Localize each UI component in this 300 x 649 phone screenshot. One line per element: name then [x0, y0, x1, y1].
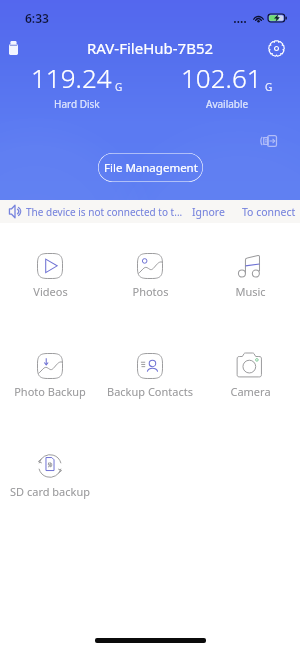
staticText: 102.61 — [181, 60, 262, 95]
button[interactable]: To connect — [237, 202, 300, 222]
button[interactable]: Ignore — [186, 202, 231, 222]
staticText: Photo Backup — [14, 384, 86, 399]
staticText: SD card backup — [10, 484, 90, 499]
staticText: G — [115, 80, 123, 94]
staticText: Backup Contacts — [107, 384, 193, 399]
button[interactable]: SD card backup — [0, 423, 100, 523]
staticText: The device is not connected to t... — [26, 205, 183, 219]
staticText: Photos — [132, 284, 169, 299]
staticText: Camera — [230, 384, 271, 399]
button[interactable]: File Management — [98, 153, 203, 182]
staticText: Hard Disk — [54, 97, 100, 111]
button[interactable]: Backup Contacts — [100, 323, 200, 423]
staticText: RAV-FileHub-7B52 — [87, 38, 214, 58]
staticText: 6:33 — [25, 10, 49, 26]
button[interactable]: Music — [200, 223, 300, 323]
button[interactable]: Videos — [0, 223, 100, 323]
button[interactable]: Device battery — [0, 35, 26, 61]
button[interactable]: Photos — [100, 223, 200, 323]
staticText: G — [265, 80, 273, 94]
staticText: Videos — [33, 284, 68, 299]
button[interactable]: Settings — [263, 35, 289, 61]
staticText: Available — [206, 97, 249, 111]
button[interactable]: Camera — [200, 323, 300, 423]
staticText: Music — [235, 284, 266, 299]
staticText: Ignore — [192, 205, 225, 219]
staticText: 119.24 — [31, 60, 112, 95]
button[interactable]: Photo Backup — [0, 323, 100, 423]
button[interactable]: Cast to device — [255, 127, 282, 154]
staticText: File Management — [104, 160, 198, 176]
staticText: To connect — [242, 205, 296, 219]
